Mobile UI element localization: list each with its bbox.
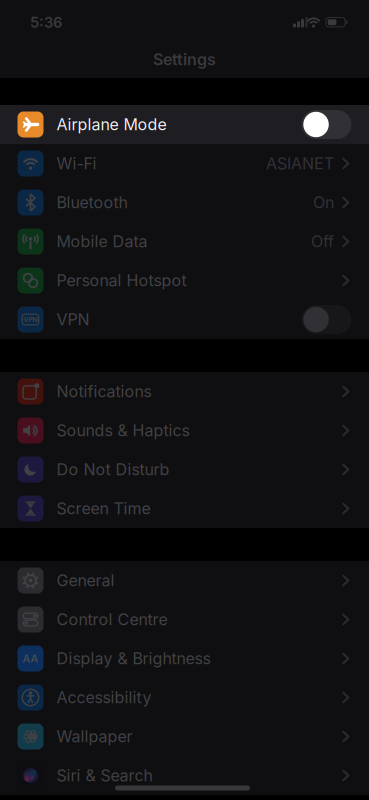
staticText: General — [56, 571, 114, 590]
button[interactable]: Do Not Disturb — [0, 450, 369, 489]
button[interactable]: Bluetooth — [0, 183, 369, 222]
button[interactable]: Sounds & Haptics — [0, 411, 369, 450]
button[interactable]: AA — [0, 639, 369, 678]
staticText: Do Not Disturb — [56, 460, 169, 479]
button[interactable]: Siri & Search — [0, 756, 369, 795]
staticText: VPN — [56, 310, 89, 329]
staticText: Airplane Mode — [56, 115, 166, 134]
button[interactable]: Airplane Mode switch, off — [301, 110, 351, 139]
button[interactable]: Mobile Data — [0, 222, 369, 261]
staticText: Screen Time — [56, 499, 150, 518]
staticText: Sounds & Haptics — [56, 421, 189, 440]
staticText: Personal Hotspot — [56, 271, 186, 290]
staticText: ASIANET — [266, 154, 334, 173]
staticText: Bluetooth — [56, 193, 127, 212]
staticText: Control Centre — [56, 610, 167, 629]
button[interactable]: General — [0, 561, 369, 600]
staticText: 5:36 — [30, 14, 62, 31]
button[interactable]: Control Centre — [0, 600, 369, 639]
staticText: Wi-Fi — [56, 154, 96, 173]
button[interactable]: Personal Hotspot — [0, 261, 369, 300]
staticText: Wallpaper — [56, 727, 132, 746]
staticText: Off — [311, 232, 334, 251]
button[interactable]: Notifications — [0, 372, 369, 411]
button[interactable]: Screen Time — [0, 489, 369, 528]
button[interactable]: Wallpaper — [0, 717, 369, 756]
button[interactable]: VPN switch, off — [301, 305, 351, 334]
staticText: Notifications — [56, 382, 151, 401]
staticText: Siri & Search — [56, 766, 152, 785]
button[interactable]: Accessibility — [0, 678, 369, 717]
button[interactable]: VPN — [0, 300, 369, 339]
staticText: Display & Brightness — [56, 649, 210, 668]
staticText: On — [313, 193, 334, 212]
button[interactable]: Wi-Fi — [0, 144, 369, 183]
button[interactable]: Airplane Mode — [0, 105, 369, 144]
staticText: Settings — [153, 50, 216, 69]
staticText: AA — [22, 652, 38, 665]
staticText: Mobile Data — [56, 232, 147, 251]
staticText: Accessibility — [56, 688, 151, 707]
staticText: VPN — [23, 316, 37, 323]
